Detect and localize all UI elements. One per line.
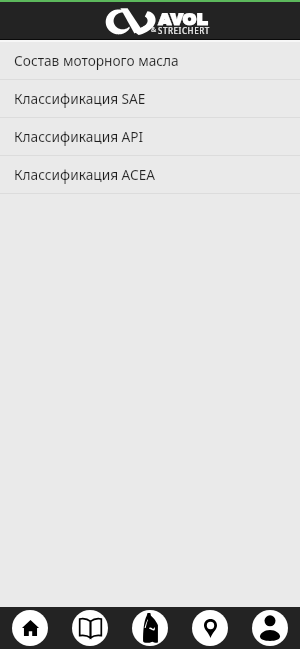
staticText: STREICHERT [158, 25, 210, 36]
button[interactable]: Классификация SAE [0, 80, 300, 118]
button[interactable]: Products [120, 607, 180, 649]
staticText: AVOL [158, 10, 208, 28]
button[interactable]: Классификация API [0, 118, 300, 156]
staticText: Классификация API [14, 127, 144, 146]
staticText: Классификация SAE [14, 89, 146, 108]
button[interactable]: Классификация ACEA [0, 156, 300, 194]
button[interactable]: Locations [180, 607, 240, 649]
button[interactable]: Profile [240, 607, 300, 649]
button[interactable]: Home [0, 607, 60, 649]
staticText: & [151, 25, 157, 35]
staticText: Классификация ACEA [14, 165, 156, 184]
staticText: Состав моторного масла [14, 51, 179, 70]
button[interactable]: Guide [60, 607, 120, 649]
button[interactable]: Состав моторного масла [0, 42, 300, 80]
